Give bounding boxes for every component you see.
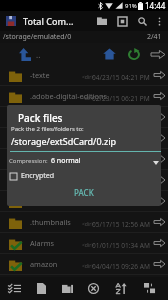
button[interactable]: Encrypted bbox=[10, 170, 55, 182]
button[interactable]: Select bbox=[112, 11, 132, 31]
staticText: Pack files bbox=[18, 111, 63, 125]
button[interactable]: Home bbox=[100, 43, 118, 65]
staticText: /storage/emulated/0 bbox=[3, 32, 72, 42]
button[interactable]: .goodreads bbox=[0, 191, 168, 212]
button[interactable]: .bookmarks bbox=[0, 128, 168, 149]
button[interactable]: Forward bbox=[149, 43, 167, 65]
staticText: 91% bbox=[125, 2, 137, 10]
button[interactable]: Up one level bbox=[16, 43, 34, 65]
staticText: <dir> bbox=[82, 137, 95, 144]
staticText: 14:44 bbox=[145, 0, 166, 11]
button[interactable]: .adobe-digital-editions bbox=[0, 86, 168, 107]
staticText: Encrypted bbox=[21, 171, 55, 181]
staticText: .. bbox=[36, 49, 41, 60]
button[interactable]: Sort bbox=[110, 277, 132, 300]
staticText: <dir> bbox=[82, 95, 95, 102]
staticText: -texte bbox=[30, 70, 50, 80]
staticText: 04/23/15 04:21 PM bbox=[92, 73, 150, 82]
staticText: .thumbnails bbox=[30, 217, 71, 227]
button[interactable]: New file bbox=[30, 277, 52, 300]
button[interactable]: Select all bbox=[3, 277, 25, 300]
staticText: 03/02/15 11:22 AM bbox=[92, 136, 151, 145]
button[interactable]: Clear selection bbox=[82, 277, 104, 300]
button[interactable]: Open folder bbox=[92, 11, 112, 31]
button[interactable]: New folder bbox=[56, 277, 78, 300]
button[interactable]: .android bbox=[0, 107, 168, 128]
staticText: <dir> bbox=[82, 263, 95, 270]
button[interactable]: .estrongs bbox=[0, 149, 168, 170]
staticText: PACK bbox=[74, 187, 94, 198]
button[interactable]: .face bbox=[0, 170, 168, 191]
staticText: 2/41 bbox=[147, 32, 162, 42]
button[interactable]: More options bbox=[152, 11, 166, 31]
button[interactable]: Copy bbox=[139, 277, 161, 300]
staticText: <dir> bbox=[82, 221, 95, 228]
button[interactable]: Alarms bbox=[0, 233, 168, 254]
button[interactable]: .thumbnails bbox=[0, 212, 168, 233]
staticText: .estrongs bbox=[30, 154, 62, 164]
button[interactable]: -texte bbox=[0, 65, 168, 86]
staticText: 01/01/15 01:34 AM bbox=[92, 241, 151, 250]
staticText: 04/09/15 06:44 AM bbox=[92, 199, 151, 208]
staticText: Alarms bbox=[30, 238, 54, 248]
staticText: Pack the 2 files/folders to: bbox=[11, 125, 84, 133]
staticText: /storage/extSdCard/0.zip bbox=[11, 135, 117, 147]
button[interactable]: Compression: bbox=[7, 154, 161, 168]
staticText: 02/23/15 06:21 PM bbox=[92, 94, 150, 103]
staticText: .android bbox=[30, 112, 59, 122]
staticText: <dir> bbox=[82, 242, 95, 249]
staticText: <dir> bbox=[82, 200, 95, 207]
staticText: 05/17/15 12:56 AM bbox=[92, 220, 151, 229]
staticText: .face bbox=[30, 175, 47, 185]
staticText: 6 normal bbox=[51, 156, 81, 166]
staticText: 04/04/15 09:26 AM bbox=[92, 262, 151, 271]
staticText: .adobe-digital-editions bbox=[30, 91, 108, 101]
button[interactable]: amazon bbox=[0, 254, 168, 275]
button[interactable]: PACK bbox=[7, 185, 161, 200]
staticText: <dir> bbox=[82, 74, 95, 81]
staticText: Total Com... bbox=[23, 15, 74, 27]
button[interactable]: Refresh bbox=[125, 43, 143, 65]
button[interactable]: Search bbox=[132, 11, 152, 31]
staticText: .bookmarks bbox=[30, 133, 71, 143]
staticText: Compression: bbox=[9, 157, 48, 165]
staticText: amazon bbox=[30, 259, 58, 269]
